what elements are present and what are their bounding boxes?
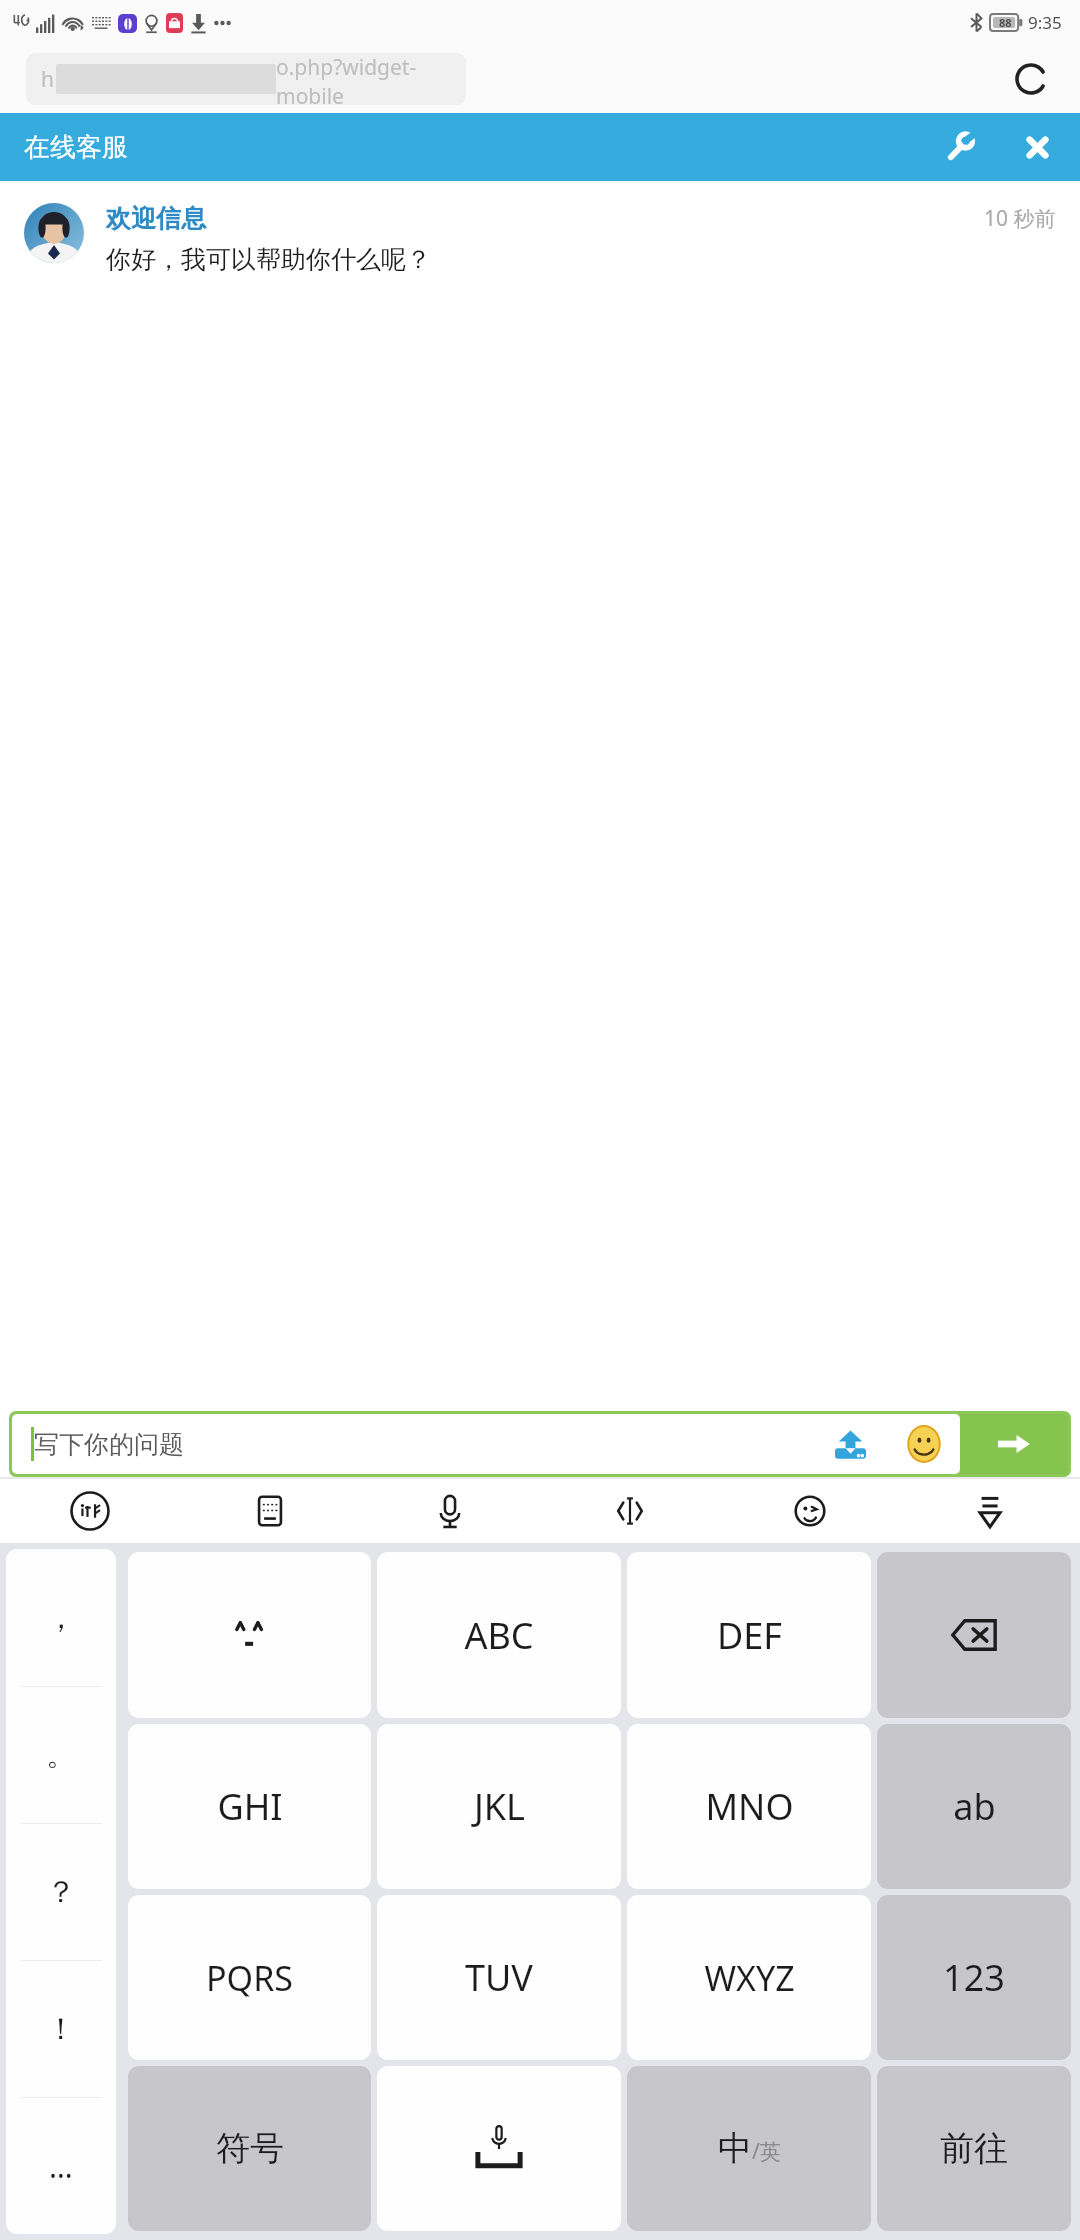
staticText: ！: [46, 2010, 76, 2048]
staticText: 9:35: [1028, 11, 1062, 34]
button[interactable]: Input method: [0, 1478, 180, 1543]
button[interactable]: WXYZ: [627, 1895, 871, 2060]
button[interactable]: Settings: [934, 122, 984, 172]
button[interactable]: DEF: [627, 1552, 871, 1718]
staticText: 。: [46, 1736, 76, 1774]
button[interactable]: ab: [877, 1724, 1071, 1889]
button[interactable]: PQRS: [128, 1895, 371, 2060]
staticText: GHI: [217, 1782, 283, 1831]
staticText: WXYZ: [704, 1955, 795, 2001]
staticText: 欢迎信息: [106, 203, 206, 234]
button[interactable]: Voice input: [360, 1478, 540, 1543]
staticText: 88: [999, 15, 1012, 30]
staticText: ，: [46, 1599, 76, 1637]
button[interactable]: Emoticons: [720, 1478, 900, 1543]
button[interactable]: TUV: [377, 1895, 621, 2060]
button[interactable]: Delete: [877, 1552, 1071, 1718]
button[interactable]: 符号: [128, 2066, 371, 2231]
staticText: DEF: [717, 1611, 782, 1660]
button[interactable]: Cursor move: [540, 1478, 720, 1543]
staticText: 10 秒前: [984, 204, 1056, 233]
button[interactable]: ABC: [377, 1552, 621, 1718]
staticText: /英: [752, 2137, 781, 2166]
staticText: 写下你的问题: [34, 1429, 184, 1460]
button[interactable]: Close: [1012, 122, 1062, 172]
staticText: h: [41, 65, 54, 94]
button[interactable]: 中: [627, 2066, 871, 2231]
staticText: 符号: [216, 2127, 284, 2170]
button[interactable]: Keyboard: [180, 1478, 360, 1543]
button[interactable]: Upload file: [824, 1418, 876, 1470]
staticText: 中: [718, 2127, 752, 2170]
staticText: 前往: [940, 2127, 1008, 2170]
button[interactable]: 前往: [877, 2066, 1071, 2231]
staticText: JKL: [474, 1782, 525, 1831]
button[interactable]: 写下你的问题: [12, 1414, 960, 1474]
button[interactable]: Space: [377, 2066, 621, 2231]
staticText: TUV: [465, 1953, 533, 2002]
button[interactable]: MNO: [627, 1724, 871, 1889]
staticText: ？: [46, 1873, 76, 1911]
staticText: 你好，我可以帮助你什么呢？: [106, 244, 431, 275]
button[interactable]: Send: [960, 1414, 1068, 1474]
button[interactable]: 123: [877, 1895, 1071, 2060]
button[interactable]: Emoji: [898, 1418, 950, 1470]
button[interactable]: Reload: [1008, 56, 1054, 102]
staticText: …: [49, 2146, 73, 2187]
staticText: ABC: [464, 1611, 534, 1660]
staticText: ab: [953, 1782, 996, 1831]
staticText: PQRS: [206, 1955, 293, 2001]
staticText: 123: [943, 1953, 1005, 2002]
button[interactable]: JKL: [377, 1724, 621, 1889]
button[interactable]: [128, 1552, 371, 1718]
button[interactable]: h: [26, 53, 466, 105]
staticText: 在线客服: [24, 131, 128, 164]
staticText: o.php?widget-mobile: [276, 53, 466, 105]
button[interactable]: ，: [6, 1549, 116, 2234]
button[interactable]: Hide keyboard: [900, 1478, 1080, 1543]
button[interactable]: GHI: [128, 1724, 371, 1889]
staticText: MNO: [705, 1782, 794, 1831]
